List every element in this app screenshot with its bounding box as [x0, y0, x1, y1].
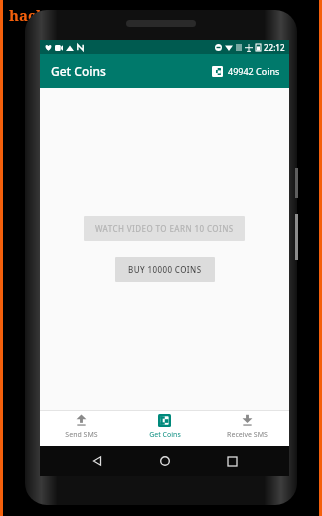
button[interactable]: Receive SMS [206, 410, 289, 446]
staticText: BUY 10000 COINS [128, 264, 202, 275]
staticText: hack-cheat.org [9, 5, 122, 25]
staticText: Send SMS [65, 430, 98, 440]
staticText: Get Coins [149, 430, 181, 440]
button[interactable]: WATCH VIDEO TO EARN 10 COINS [84, 216, 245, 241]
staticText: WATCH VIDEO TO EARN 10 COINS [95, 223, 234, 234]
button[interactable]: 49942 Coins [203, 60, 289, 82]
staticText: Receive SMS [227, 430, 268, 440]
staticText: Get Coins [51, 63, 106, 79]
button[interactable]: BUY 10000 COINS [115, 257, 215, 282]
button[interactable]: Back [86, 450, 108, 472]
staticText: 49942 Coins [228, 65, 280, 77]
button[interactable]: Home [154, 450, 176, 472]
button[interactable]: Get Coins [123, 410, 206, 446]
button[interactable]: Send SMS [40, 410, 123, 446]
button[interactable]: Recents [221, 450, 243, 472]
staticText: 22:12 [264, 42, 285, 53]
